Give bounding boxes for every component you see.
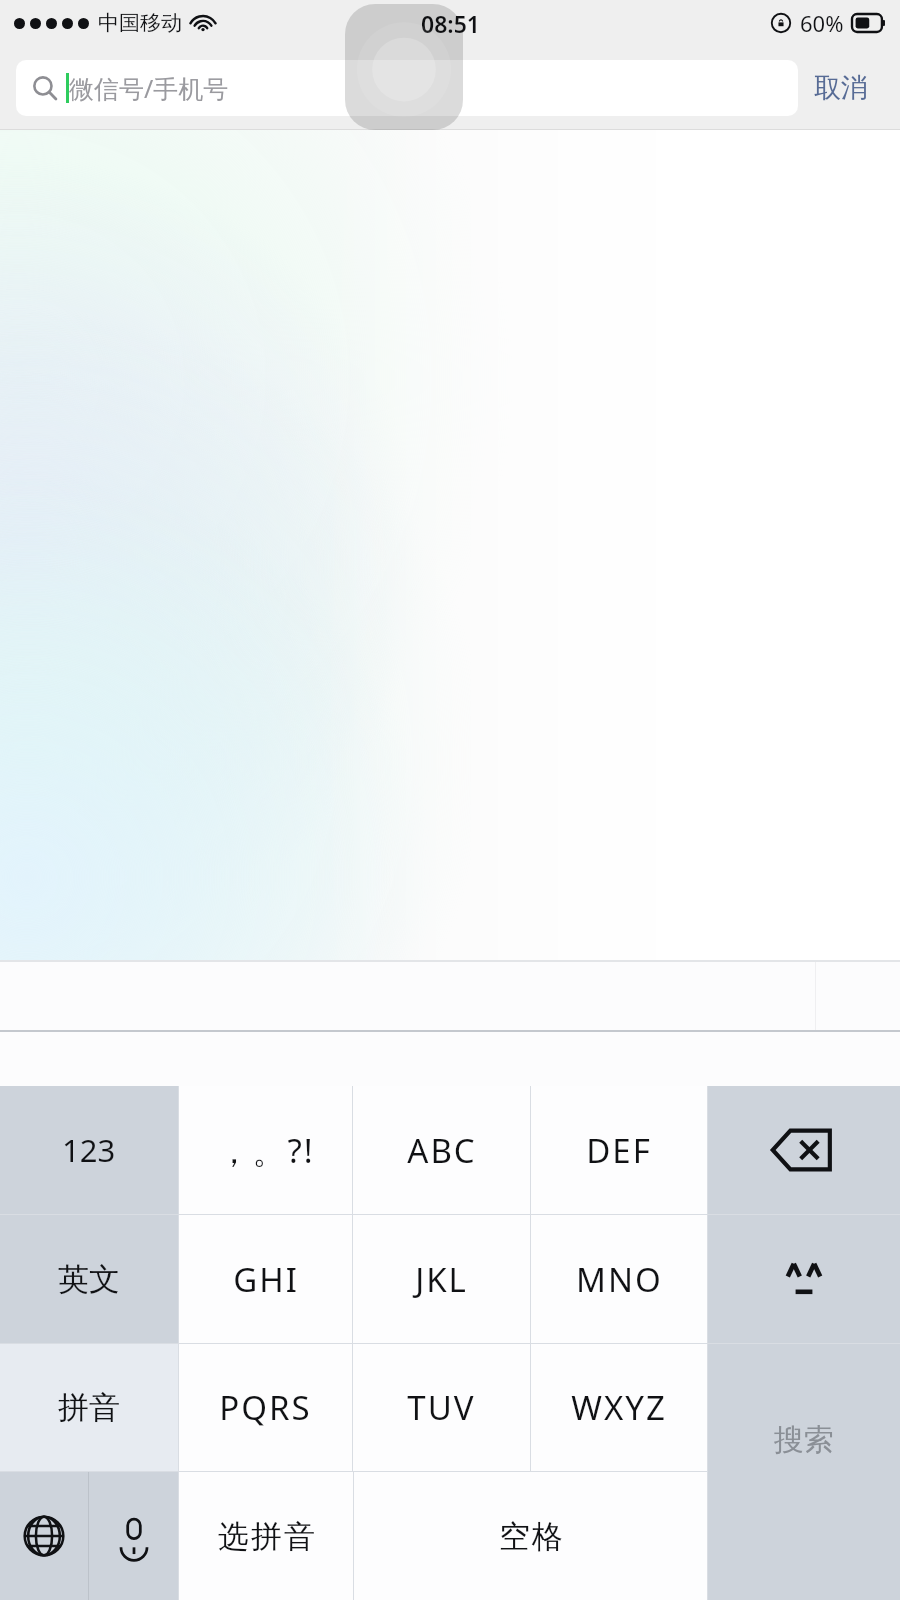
staticText: 选拼音 [217,1517,316,1556]
staticText: TUV [407,1385,476,1430]
staticText: WXYZ [571,1385,667,1430]
button[interactable]: 选拼音 [179,1472,353,1600]
button[interactable]: Switch keyboard language [0,1472,88,1600]
button[interactable]: PQRS [179,1344,352,1471]
button[interactable]: Assistive touch [345,4,463,130]
staticText: ABC [407,1128,477,1173]
button[interactable]: 微信号/手机号 [16,60,798,116]
button[interactable]: DEF [531,1086,707,1214]
staticText: 123 [62,1129,116,1171]
staticText: 60% [800,8,844,38]
staticText: 空格 [498,1517,564,1556]
staticText: GHI [233,1257,299,1302]
button[interactable]: ，。?! [179,1086,352,1214]
button[interactable]: WXYZ [531,1344,707,1471]
button[interactable]: 123 [0,1086,178,1214]
staticText: 08:51 [421,8,480,39]
button[interactable]: 取消 [798,63,884,113]
staticText: 取消 [814,71,868,105]
button[interactable]: ABC [353,1086,530,1214]
button[interactable]: Emoji [708,1215,900,1343]
staticText: ，。?! [217,1128,315,1173]
staticText: PQRS [219,1385,312,1430]
button[interactable]: TUV [353,1344,530,1471]
staticText: MNO [576,1257,663,1302]
button[interactable]: 拼音 [0,1344,178,1471]
staticText: 搜索 [774,1421,834,1459]
staticText: 中国移动 [98,10,182,36]
button[interactable]: 空格 [354,1472,707,1600]
staticText: 拼音 [58,1388,120,1427]
staticText: 英文 [58,1260,120,1299]
staticText: 微信号/手机号 [69,71,229,105]
button[interactable]: Voice input [89,1472,178,1600]
staticText: JKL [415,1257,468,1302]
button[interactable]: MNO [531,1215,707,1343]
button[interactable]: GHI [179,1215,352,1343]
button[interactable]: Backspace [708,1086,900,1214]
button[interactable]: 搜索 [708,1344,900,1600]
button[interactable]: 英文 [0,1215,178,1343]
staticText: DEF [586,1128,652,1173]
button[interactable]: JKL [353,1215,530,1343]
